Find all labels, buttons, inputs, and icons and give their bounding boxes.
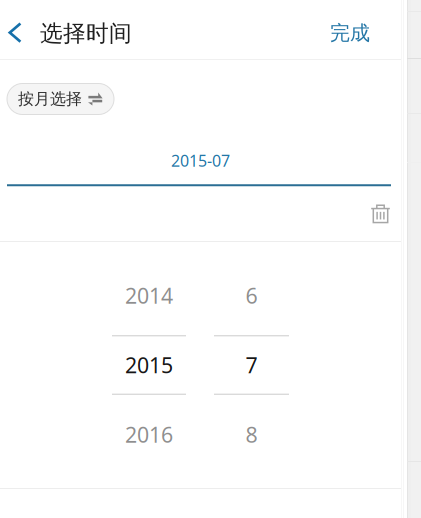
button[interactable]: 2016 [112, 400, 186, 469]
button[interactable]: Back [0, 0, 31, 59]
button[interactable]: 8 [214, 400, 289, 469]
button[interactable]: 6 [214, 261, 289, 330]
staticText: 选择时间 [40, 20, 132, 47]
staticText: 8 [245, 420, 257, 449]
staticText: 2015-07 [171, 150, 230, 171]
staticText: 2016 [125, 420, 173, 449]
button[interactable]: Delete [361, 195, 399, 232]
staticText: 7 [245, 351, 257, 379]
staticText: 6 [245, 281, 257, 310]
button[interactable]: 2015-07 [0, 114, 401, 186]
button[interactable]: 2014 [112, 261, 186, 330]
button[interactable]: 2015 [112, 330, 186, 400]
button[interactable]: 完成 [291, 0, 401, 59]
button[interactable]: 按月选择 [7, 83, 114, 114]
staticText: 完成 [330, 21, 370, 45]
staticText: 2015 [125, 351, 173, 379]
button[interactable]: 7 [214, 330, 289, 400]
staticText: 2014 [125, 281, 173, 310]
staticText: 按月选择 [18, 89, 82, 109]
